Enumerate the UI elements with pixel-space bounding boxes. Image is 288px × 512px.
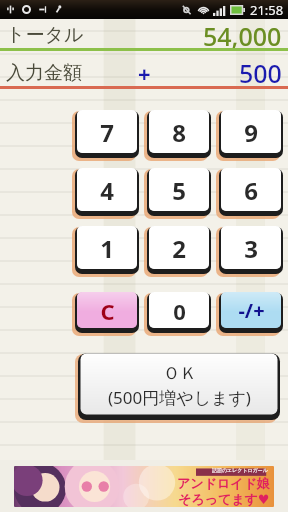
button[interactable]: 1 <box>75 224 139 274</box>
button[interactable]: 3 <box>219 224 283 274</box>
staticText: + <box>138 58 151 88</box>
button[interactable]: 5 <box>147 166 211 216</box>
button[interactable]: 8 <box>147 108 211 158</box>
button[interactable]: 0 <box>147 290 211 333</box>
button[interactable]: ＯＫ <box>78 351 280 420</box>
staticText: 21:58 <box>250 1 284 19</box>
button[interactable]: 9 <box>219 108 283 158</box>
staticText: 500 <box>239 56 282 90</box>
button[interactable]: 4 <box>75 166 139 216</box>
staticText: -/+ <box>238 297 265 324</box>
staticText: 1 <box>100 232 114 265</box>
staticText: 6 <box>244 174 258 207</box>
staticText: アンドロイド娘 <box>177 475 270 491</box>
button[interactable]: -/+ <box>219 290 283 333</box>
button[interactable]: 6 <box>219 166 283 216</box>
button[interactable]: Advertisement <box>14 466 274 507</box>
button[interactable]: 7 <box>75 108 139 158</box>
staticText: 8 <box>172 116 186 149</box>
staticText: ＯＫ <box>163 363 197 384</box>
staticText: C <box>100 296 115 326</box>
staticText: 入力金額 <box>6 61 82 85</box>
staticText: トータル <box>6 23 84 47</box>
staticText: 7 <box>100 116 114 149</box>
staticText: 話題のエレクトロガール <box>212 467 268 473</box>
button[interactable]: 2 <box>147 224 211 274</box>
staticText: 9 <box>244 116 258 149</box>
staticText: 3 <box>244 232 258 265</box>
staticText: 2 <box>172 232 186 265</box>
staticText: (500円増やします) <box>108 386 251 409</box>
staticText: そろってます♥ <box>178 491 270 507</box>
staticText: 4 <box>100 174 114 207</box>
staticText: 5 <box>172 174 186 207</box>
staticText: 0 <box>173 296 186 326</box>
button[interactable]: C <box>75 290 139 333</box>
staticText: 54,000 <box>203 19 282 51</box>
